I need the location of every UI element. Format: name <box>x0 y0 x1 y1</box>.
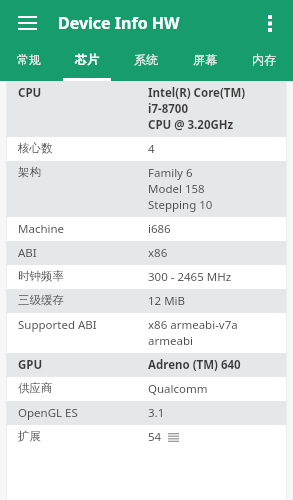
button[interactable]: 核心数 <box>6 137 287 161</box>
button[interactable]: Open navigation drawer <box>10 6 44 40</box>
staticText: 内存 <box>252 52 276 67</box>
staticText: Family 6 <box>148 165 193 181</box>
staticText: CPU <box>18 85 42 101</box>
button[interactable]: 芯片 <box>58 45 116 81</box>
button[interactable]: 内存 <box>234 45 293 81</box>
button[interactable]: 常规 <box>0 45 58 81</box>
staticText: 芯片 <box>75 52 99 67</box>
staticText: x86 armeabi-v7a armeabi <box>148 317 279 349</box>
button[interactable]: 供应商 <box>6 377 287 401</box>
button[interactable]: 时钟频率 <box>6 265 287 289</box>
staticText: Intel(R) Core(TM) i7-8700 <box>148 85 279 117</box>
staticText: 核心数 <box>18 141 53 155</box>
button[interactable]: GPU <box>6 353 287 377</box>
button[interactable]: 屏幕 <box>175 45 234 81</box>
staticText: Adreno (TM) 640 <box>148 357 241 373</box>
button[interactable]: ABI <box>6 241 287 265</box>
staticText: 4 <box>148 141 155 157</box>
button[interactable]: More options <box>253 6 287 40</box>
staticText: 时钟频率 <box>18 269 64 283</box>
staticText: 扩展 <box>18 429 41 443</box>
button[interactable]: 架构 <box>6 161 287 217</box>
staticText: 三级缓存 <box>18 293 64 307</box>
staticText: 常规 <box>17 52 41 67</box>
staticText: Model 158 <box>148 181 205 197</box>
button[interactable]: CPU <box>6 81 287 137</box>
button[interactable]: Machine <box>6 217 287 241</box>
staticText: 系统 <box>134 52 158 67</box>
button[interactable]: 扩展 <box>6 425 287 449</box>
staticText: ABI <box>18 245 37 261</box>
staticText: 供应商 <box>18 381 53 395</box>
staticText: 3.1 <box>148 405 165 421</box>
staticText: 300 - 2465 MHz <box>148 269 232 285</box>
button[interactable]: 系统 <box>116 45 175 81</box>
button[interactable]: Supported ABI <box>6 313 287 353</box>
staticText: Device Info HW <box>58 12 180 34</box>
staticText: Machine <box>18 221 65 237</box>
staticText: GPU <box>18 357 43 373</box>
staticText: x86 <box>148 245 168 261</box>
staticText: Supported ABI <box>18 317 97 333</box>
staticText: 屏幕 <box>193 52 217 67</box>
staticText: CPU @ 3.20GHz <box>148 117 234 133</box>
staticText: 12 MiB <box>148 293 186 309</box>
button[interactable]: OpenGL ES <box>6 401 287 425</box>
staticText: 架构 <box>18 165 41 179</box>
staticText: Qualcomm <box>148 381 208 397</box>
staticText: i686 <box>148 221 171 237</box>
staticText: 54 <box>148 429 162 445</box>
button[interactable]: 三级缓存 <box>6 289 287 313</box>
staticText: Stepping 10 <box>148 197 213 213</box>
staticText: OpenGL ES <box>18 405 78 421</box>
